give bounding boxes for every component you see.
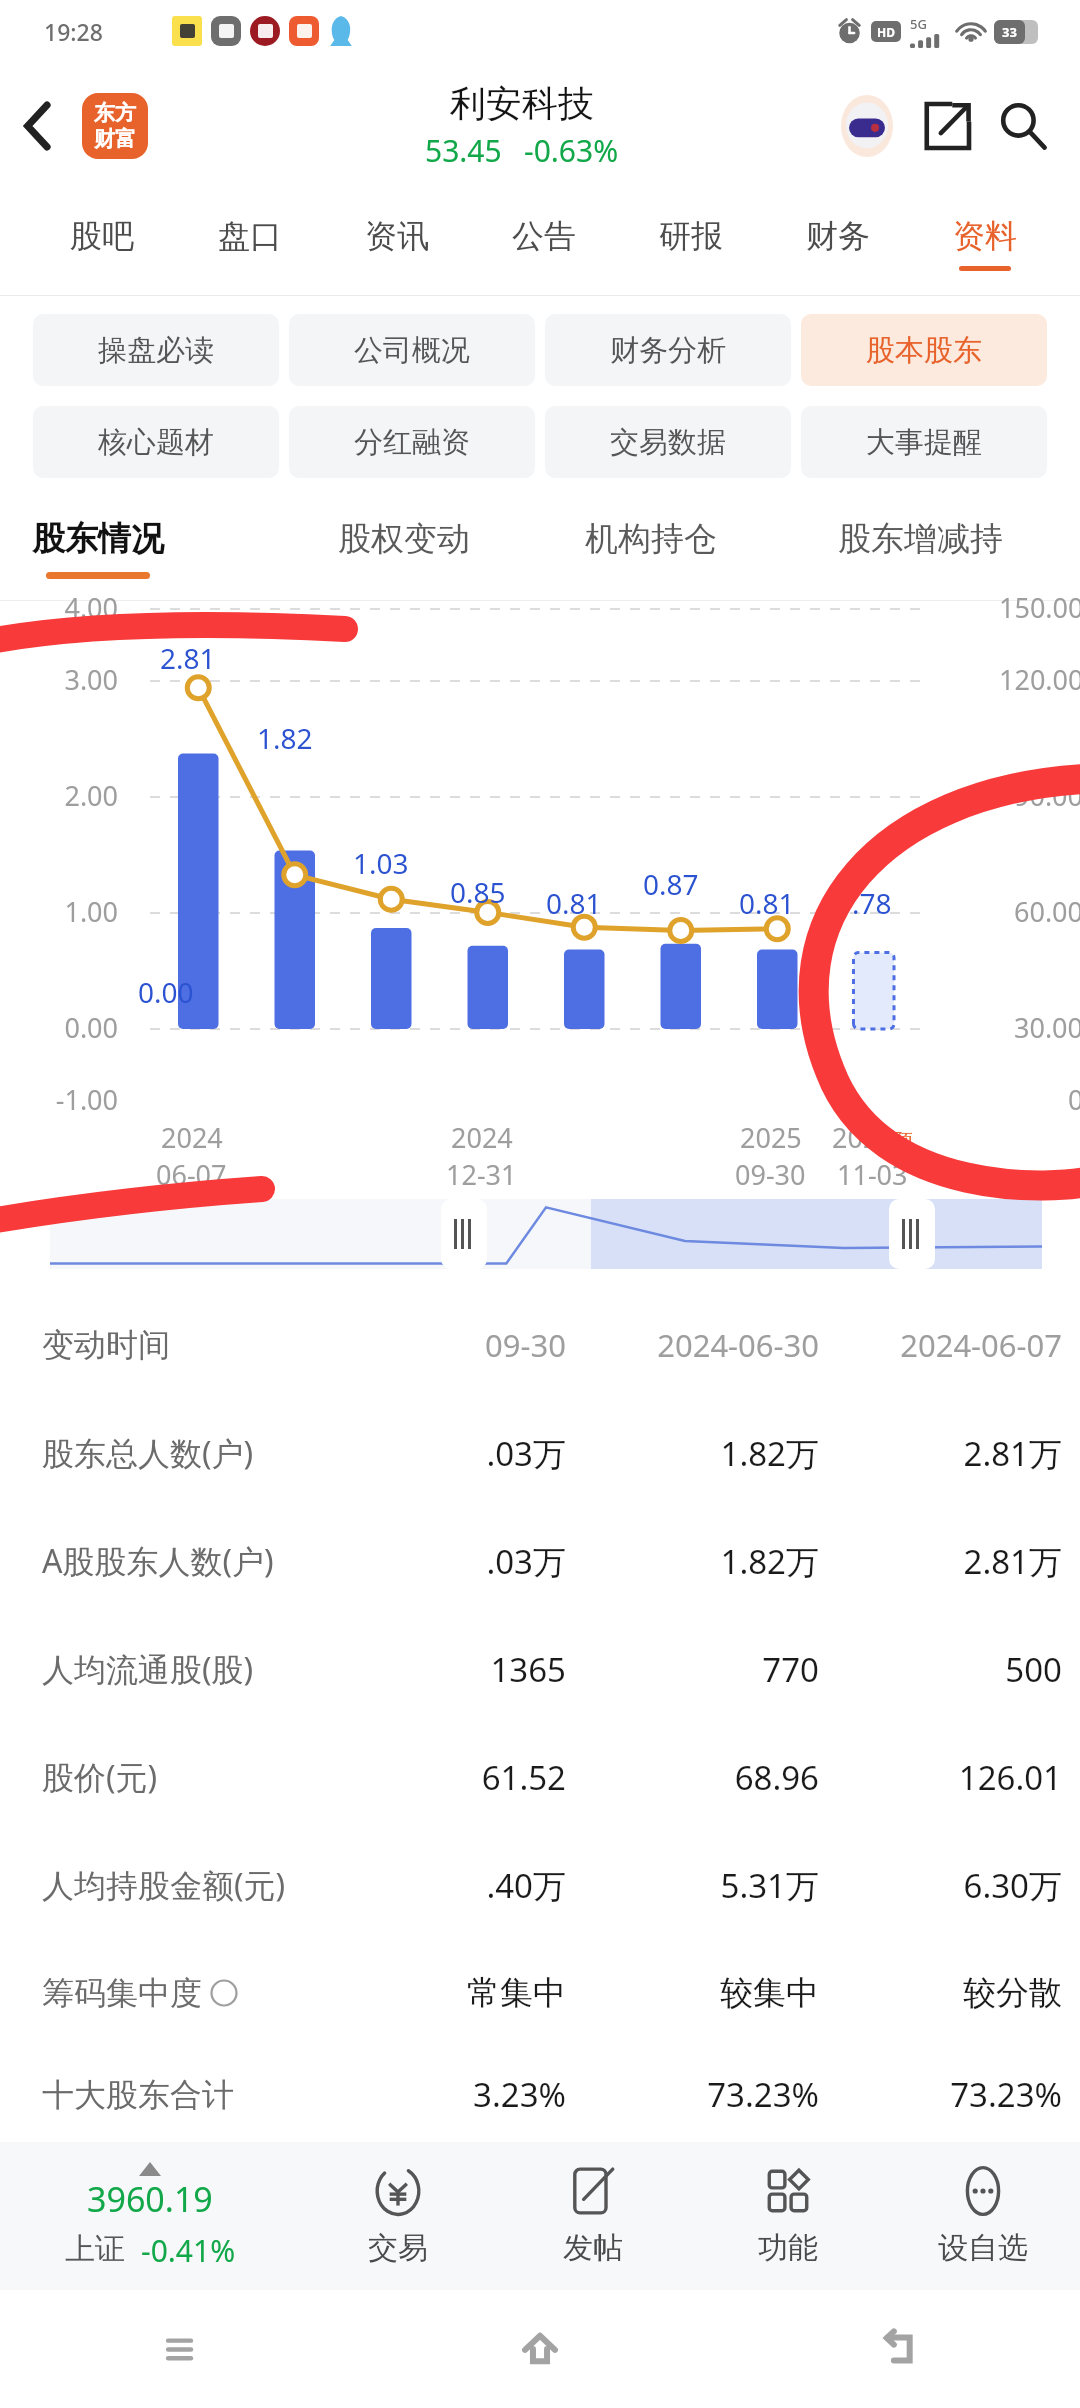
staticText: 0.85 [450,873,506,911]
staticText: 5G [910,15,927,33]
staticText: 设自选 [938,2229,1028,2267]
staticText: .40万 [320,1863,566,1908]
button[interactable]: Range handle [889,1199,935,1269]
button[interactable]: 人均流通股(股) [0,1615,1080,1723]
staticText: HD [877,24,895,40]
staticText: 财务 [806,216,870,256]
staticText: 筹码集中度 [42,1973,202,2013]
staticText: 0 [1068,1081,1080,1118]
button[interactable]: East Money [82,93,148,159]
button[interactable]: Home [360,2290,720,2408]
button[interactable]: 筹码集中度 [0,1939,1080,2047]
button[interactable]: 变动时间 [0,1291,1080,1399]
button[interactable]: 公告 [470,190,617,296]
button[interactable]: 盘口 [176,190,323,296]
staticText: 交易数据 [610,424,726,461]
button[interactable]: 研报 [617,190,764,296]
staticText: 利安科技 [450,81,594,126]
staticText: 1.82 [257,719,313,757]
staticText: 盘口 [218,216,282,256]
button[interactable]: 财务分析 [545,314,791,386]
staticText: 53.45 [425,130,502,171]
button[interactable]: 机构持仓 [527,496,774,600]
staticText: 股吧 [70,216,134,256]
button[interactable]: 人均持股金额(元) [0,1831,1080,1939]
staticText: 12-31 [446,1156,517,1193]
staticText: 变动时间 [42,1325,170,1365]
button[interactable]: Search [986,89,1060,163]
button[interactable]: 财务 [764,190,911,296]
button[interactable]: 交易数据 [545,406,791,478]
staticText: 770 [574,1647,819,1692]
button[interactable]: Range handle [441,1199,487,1269]
staticText: 交易 [368,2229,428,2267]
staticText: 2025 [832,1119,894,1156]
button[interactable]: A股股东人数(户) [0,1507,1080,1615]
staticText: 分红融资 [354,424,470,461]
button[interactable]: 股吧 [28,190,176,296]
staticText: 61.52 [320,1755,566,1800]
button[interactable]: Back [8,96,68,156]
button[interactable]: 股东增减持 [774,496,1066,600]
staticText: 功能 [758,2229,818,2267]
staticText: 人均流通股(股) [42,1647,254,1691]
button[interactable]: 股权变动 [280,496,527,600]
button[interactable]: 操盘必读 [33,314,279,386]
button[interactable]: 核心题材 [33,406,279,478]
staticText: 股东总人数(户) [42,1431,254,1475]
button[interactable]: Back [720,2290,1080,2408]
button[interactable]: 股东总人数(户) [0,1399,1080,1507]
button[interactable]: Assistant [830,89,904,163]
staticText: 68.96 [574,1755,819,1800]
staticText: 0.81 [739,884,795,922]
staticText: 公司概况 [354,332,470,369]
staticText: 核心题材 [98,424,214,461]
staticText: 1.82万 [574,1431,819,1476]
staticText: 东方 [94,100,136,126]
staticText: .03万 [320,1431,566,1476]
button[interactable]: 公司概况 [289,314,535,386]
button[interactable]: 分红融资 [289,406,535,478]
staticText: 09-30 [735,1156,806,1193]
staticText: 30.00 [1014,1009,1080,1046]
staticText: 3.23% [320,2072,566,2117]
staticText: 研报 [659,216,723,256]
staticText: 资料 [953,216,1017,256]
staticText: 财务分析 [610,332,726,369]
staticText: 2.81万 [827,1431,1062,1476]
staticText: 73.23% [574,2072,819,2117]
staticText: 4.00 [18,589,118,626]
staticText: 1365 [320,1647,566,1692]
button[interactable]: 功能 [690,2142,885,2290]
staticText: 资讯 [365,216,429,256]
button[interactable]: 股本股东 [801,314,1047,386]
staticText: A股股东人数(户) [42,1539,274,1583]
staticText: 19:28 [44,16,103,47]
staticText: 财富 [94,126,136,152]
button[interactable]: 资讯 [323,190,470,296]
staticText: 11-03 [837,1156,908,1193]
staticText: 6.30万 [827,1863,1062,1908]
staticText: 1.82万 [574,1539,819,1584]
staticText: 股价(元) [42,1755,158,1799]
staticText: 2025 [740,1119,802,1156]
button[interactable]: Share [910,89,984,163]
button[interactable]: 大事提醒 [801,406,1047,478]
staticText: 06-07 [156,1156,227,1193]
button[interactable]: 股东情况 [32,496,280,600]
button[interactable]: Recents [0,2290,360,2408]
button[interactable]: 3960.19 [0,2162,300,2271]
button[interactable]: 股价(元) [0,1723,1080,1831]
button[interactable]: 发帖 [495,2142,690,2290]
button[interactable]: 设自选 [885,2142,1080,2290]
staticText: 0.00 [138,973,194,1011]
staticText: 股东情况 [32,518,164,560]
staticText: 90.00 [1014,777,1080,814]
button[interactable]: 资料 [911,190,1058,296]
staticText: 0.00 [18,1009,118,1046]
staticText: 1.03 [353,844,409,882]
button[interactable]: 十大股东合计 [0,2047,1080,2142]
staticText: 3960.19 [87,2176,213,2222]
button[interactable]: 交易 [300,2142,495,2290]
staticText: 大事提醒 [866,424,982,461]
